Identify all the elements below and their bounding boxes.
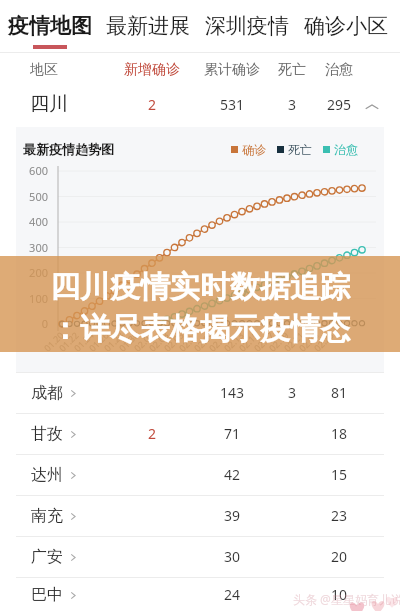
- staticText: 治愈: [334, 142, 358, 157]
- staticText: 深圳疫情: [205, 13, 289, 39]
- staticText: 南充: [31, 506, 63, 526]
- staticText: 巴中: [31, 585, 63, 605]
- staticText: 15: [309, 465, 369, 484]
- staticText: 头条 @星星妈育儿说: [293, 591, 400, 607]
- staticText: 400: [14, 214, 48, 229]
- staticText: 23: [309, 506, 369, 525]
- button[interactable]: 巴中: [0, 577, 400, 611]
- staticText: 治愈: [309, 61, 369, 79]
- staticText: 01.26: [86, 328, 111, 354]
- staticText: 2: [122, 95, 182, 114]
- staticText: 甘孜: [31, 424, 63, 444]
- staticText: 确诊: [242, 142, 266, 157]
- staticText: 71: [202, 424, 262, 443]
- staticText: 成都: [31, 383, 63, 403]
- staticText: 02.25: [311, 328, 336, 354]
- staticText: 02.21: [281, 328, 306, 354]
- staticText: 18: [309, 424, 369, 443]
- staticText: 500: [14, 189, 48, 204]
- staticText: 01.28: [101, 328, 126, 354]
- staticText: 四川: [30, 92, 68, 116]
- staticText: 20: [309, 547, 369, 566]
- button[interactable]: Collapse province: [364, 99, 380, 115]
- staticText: 02.03: [146, 328, 171, 354]
- staticText: 02.09: [191, 328, 216, 354]
- button[interactable]: 南充: [0, 495, 400, 536]
- button[interactable]: 成都: [0, 372, 400, 413]
- staticText: 死亡: [288, 142, 312, 157]
- staticText: ：详尽表格揭示疫情态: [50, 310, 350, 348]
- staticText: 100: [14, 291, 48, 306]
- staticText: 确诊小区: [304, 13, 388, 39]
- staticText: 四川疫情实时数据追踪: [50, 268, 350, 306]
- staticText: 死亡: [262, 61, 322, 79]
- button[interactable]: 最新进展: [106, 0, 190, 45]
- staticText: 02.15: [236, 328, 261, 354]
- staticText: 新增确诊: [122, 61, 182, 79]
- staticText: 地区: [30, 61, 58, 79]
- staticText: 01.24: [71, 328, 96, 354]
- staticText: 02.05: [161, 328, 186, 354]
- staticText: 531: [202, 95, 262, 114]
- staticText: 24: [202, 585, 262, 604]
- button[interactable]: 疫情地图: [8, 0, 92, 49]
- staticText: 达州: [31, 465, 63, 485]
- staticText: 02.11: [206, 328, 231, 354]
- staticText: 295: [309, 95, 369, 114]
- staticText: 600: [14, 163, 48, 178]
- staticText: 300: [14, 240, 48, 255]
- staticText: 42: [202, 465, 262, 484]
- staticText: 最新疫情趋势图: [23, 141, 114, 157]
- staticText: 200: [14, 265, 48, 280]
- staticText: 01.20: [41, 328, 66, 354]
- staticText: 累计确诊: [202, 61, 262, 79]
- staticText: 3: [262, 95, 322, 114]
- button[interactable]: 四川: [0, 87, 400, 127]
- button[interactable]: 深圳疫情: [205, 0, 289, 45]
- staticText: 02.01: [131, 328, 156, 354]
- staticText: 最新进展: [106, 13, 190, 39]
- staticText: 01.22: [56, 328, 81, 354]
- staticText: 10: [309, 585, 369, 604]
- staticText: 39: [202, 506, 262, 525]
- button[interactable]: 广安: [0, 536, 400, 577]
- button[interactable]: 达州: [0, 454, 400, 495]
- button[interactable]: 确诊小区: [304, 0, 388, 45]
- staticText: 3: [262, 383, 322, 402]
- staticText: 02.17: [251, 328, 276, 354]
- staticText: 02.13: [221, 328, 246, 354]
- staticText: 02.19: [266, 328, 291, 354]
- staticText: 143: [202, 383, 262, 402]
- staticText: 02.23: [296, 328, 321, 354]
- staticText: 01.30: [116, 328, 141, 354]
- staticText: 疫情地图: [8, 13, 92, 39]
- staticText: 81: [309, 383, 369, 402]
- staticText: 广安: [31, 547, 63, 567]
- button[interactable]: 甘孜: [0, 413, 400, 454]
- staticText: 2: [122, 424, 182, 443]
- staticText: 0: [14, 316, 48, 331]
- staticText: 02.07: [176, 328, 201, 354]
- staticText: [262, 585, 322, 604]
- staticText: 30: [202, 547, 262, 566]
